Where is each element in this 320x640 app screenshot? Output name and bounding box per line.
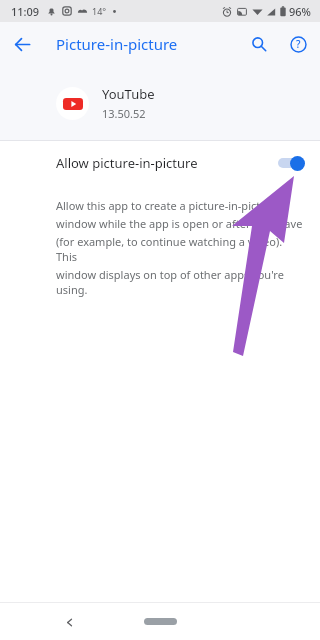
staticText: window displays on top of other apps you… — [56, 267, 306, 297]
button[interactable]: Allow picture-in-picture — [0, 141, 320, 185]
staticText: window while the app is open or after yo… — [56, 216, 303, 231]
staticText: Picture-in-picture — [56, 34, 178, 54]
staticText: 14° — [92, 5, 107, 17]
button[interactable]: Home — [144, 618, 177, 625]
staticText: Allow picture-in-picture — [56, 154, 278, 172]
button[interactable]: Back — [56, 609, 82, 635]
staticText: (for example, to continue watching a vid… — [56, 234, 306, 264]
staticText: ? — [296, 37, 301, 51]
staticText: 13.50.52 — [102, 106, 146, 121]
button[interactable]: Search — [243, 28, 275, 60]
button[interactable]: Back — [6, 28, 38, 60]
button[interactable]: YouTube — [0, 66, 320, 140]
button[interactable]: Help — [282, 28, 314, 60]
staticText: 11:09 — [11, 4, 40, 19]
staticText: Allow this app to create a picture-in-pi… — [56, 198, 278, 213]
staticText: 96% — [289, 4, 311, 19]
staticText: YouTube — [102, 85, 155, 103]
